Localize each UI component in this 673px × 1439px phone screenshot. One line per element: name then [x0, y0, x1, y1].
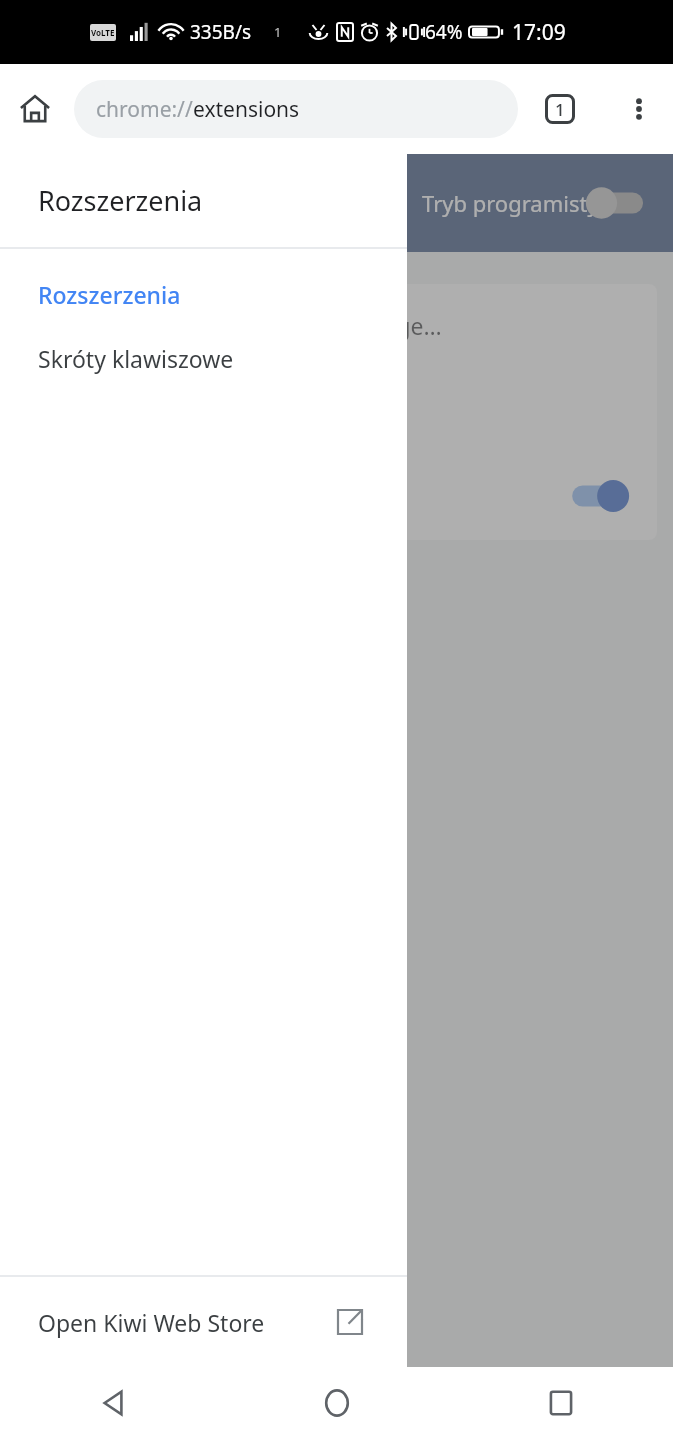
button[interactable]: Developer mode toggle: [583, 181, 651, 225]
staticText: 64%: [425, 19, 463, 45]
button[interactable]: Skróty klawiszowe: [0, 329, 407, 387]
button[interactable]: Enable extension: [561, 474, 633, 518]
button[interactable]: chrome://: [74, 80, 518, 138]
button[interactable]: Home: [8, 82, 62, 136]
button[interactable]: Home: [225, 1367, 449, 1439]
staticText: Skróty klawiszowe: [38, 343, 234, 374]
staticText: Tryb programisty: [422, 188, 599, 218]
staticText: 17:09: [512, 18, 566, 47]
staticText: Rozszerzenia: [38, 182, 203, 219]
button[interactable]: Open Kiwi Web Store: [0, 1277, 407, 1367]
staticText: VoLTE: [91, 27, 115, 38]
staticText: Pozwala sprawdzać, czy w tekście nie ma …: [40, 355, 294, 447]
button[interactable]: Tabs: [536, 85, 584, 133]
staticText: 1: [555, 98, 565, 121]
staticText: 335B/s: [190, 19, 252, 45]
staticText: chrome://: [96, 95, 193, 124]
staticText: 1: [274, 23, 282, 41]
button[interactable]: Recents: [449, 1367, 673, 1439]
button[interactable]: Back: [0, 1367, 225, 1439]
button[interactable]: Sprawdzanie gramatyki – Language…: [16, 284, 657, 540]
staticText: Rozszerzenia: [38, 279, 181, 310]
button[interactable]: Rozszerzenia: [0, 265, 407, 323]
button[interactable]: More options: [615, 85, 663, 133]
staticText: extensions: [193, 95, 300, 124]
staticText: Open Kiwi Web Store: [38, 1307, 265, 1338]
staticText: Sprawdzanie gramatyki – Language…: [40, 310, 442, 341]
